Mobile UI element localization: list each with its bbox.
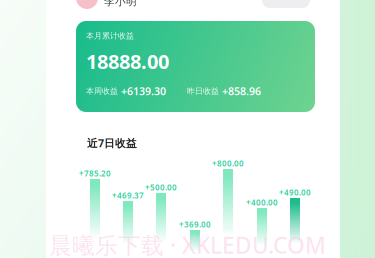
staticText: 李小明 (104, 0, 137, 8)
button[interactable]: Profile photo (76, 0, 98, 9)
staticText: 近7日收益 (87, 136, 137, 150)
staticText: 昨日收益 (187, 86, 219, 96)
staticText: +500.00 (145, 182, 177, 193)
staticText: 18888.00 (86, 48, 169, 75)
staticText: +785.20 (79, 168, 111, 179)
staticText: 本周收益 (86, 86, 118, 96)
staticText: +490.00 (279, 187, 311, 198)
staticText: +6139.30 (121, 84, 166, 98)
staticText: +469.37 (112, 190, 144, 201)
staticText: +369.00 (179, 219, 211, 230)
staticText: +400.00 (246, 197, 278, 208)
button[interactable]: Membership level (262, 0, 310, 8)
staticText: +858.96 (222, 84, 261, 98)
staticText: +800.00 (212, 158, 244, 169)
button[interactable]: 李小明 (104, 0, 137, 8)
staticText: 晨曦乐下载 · XKLEDU.COM (49, 230, 326, 258)
staticText: 本月累计收益 (86, 31, 134, 41)
